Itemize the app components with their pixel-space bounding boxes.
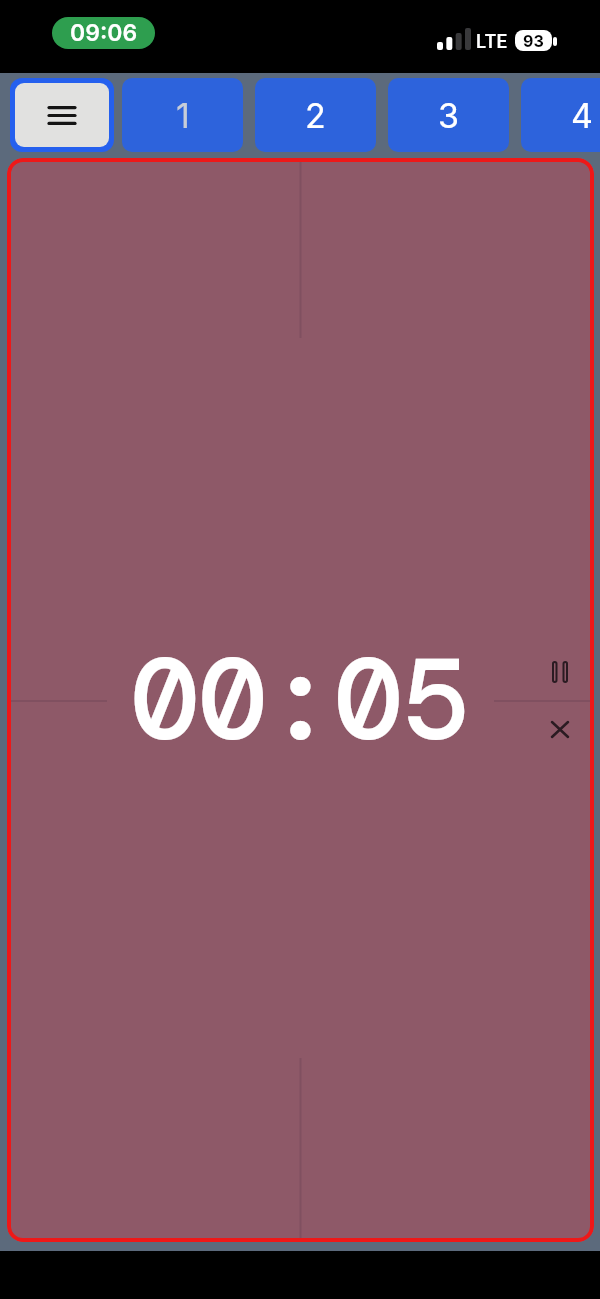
staticText: 1 xyxy=(176,95,190,136)
button[interactable] xyxy=(540,709,580,749)
staticText: 00:05 xyxy=(131,627,470,774)
staticText: 09:06 xyxy=(70,19,138,47)
button[interactable] xyxy=(15,83,109,147)
button[interactable]: 09:06 xyxy=(52,17,155,49)
staticText: 2 xyxy=(305,95,326,136)
button[interactable]: 4 xyxy=(521,78,600,152)
button[interactable]: 1 xyxy=(122,78,243,152)
staticText: 4 xyxy=(571,95,593,136)
staticText: LTE xyxy=(476,31,508,53)
button[interactable]: 3 xyxy=(388,78,509,152)
staticText: 93 xyxy=(523,31,544,50)
button[interactable] xyxy=(540,652,580,692)
staticText: 3 xyxy=(438,95,460,136)
button[interactable]: 2 xyxy=(255,78,376,152)
